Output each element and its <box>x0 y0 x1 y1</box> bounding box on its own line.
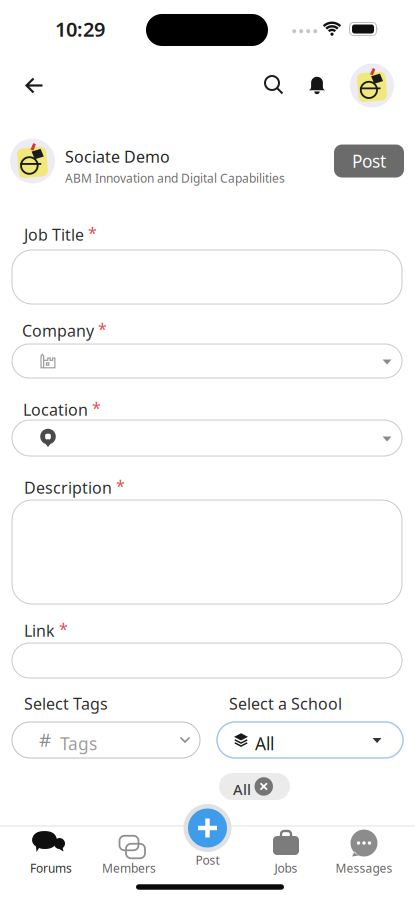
staticText: Job Title <box>24 224 84 245</box>
button[interactable]: Notifications <box>300 68 333 102</box>
button[interactable]: Messages <box>326 830 402 876</box>
button[interactable]: Post <box>183 804 231 852</box>
staticText: Select Tags <box>24 693 108 714</box>
button[interactable]: Company <box>12 344 402 378</box>
button[interactable]: Members <box>91 830 167 876</box>
staticText: Select a School <box>229 693 342 714</box>
button[interactable]: Job Title <box>12 250 402 304</box>
staticText: Forums <box>30 860 72 876</box>
staticText: Company <box>22 320 94 341</box>
button[interactable]: Location <box>12 420 402 456</box>
button[interactable]: Post <box>334 144 404 177</box>
staticText: Location <box>23 399 88 420</box>
button[interactable]: Jobs <box>248 830 324 876</box>
button[interactable]: Description <box>12 500 402 604</box>
staticText: Tags <box>60 732 97 755</box>
staticText: * <box>98 318 107 339</box>
button[interactable]: Back <box>16 69 53 102</box>
button[interactable]: Remove All <box>254 777 273 796</box>
staticText: * <box>116 475 125 496</box>
staticText: All <box>233 779 251 799</box>
staticText: Post <box>195 852 219 868</box>
staticText: Jobs <box>274 860 297 876</box>
staticText: 10:29 <box>55 16 105 42</box>
staticText: * <box>88 222 97 243</box>
staticText: Link <box>24 620 55 641</box>
staticText: Members <box>102 860 156 876</box>
staticText: Description <box>24 477 112 498</box>
staticText: * <box>59 618 68 639</box>
button[interactable]: Forums <box>13 830 89 876</box>
button[interactable]: Profile <box>350 63 394 107</box>
staticText: Post <box>352 149 386 172</box>
button[interactable]: Select Tags <box>12 722 200 758</box>
button[interactable]: Search <box>258 69 290 101</box>
staticText: All <box>255 732 274 755</box>
staticText: # <box>39 727 51 752</box>
staticText: ABM Innovation and Digital Capabilities <box>65 170 285 186</box>
staticText: Messages <box>335 860 392 876</box>
staticText: Sociate Demo <box>65 146 170 167</box>
button[interactable]: Select a School <box>217 722 403 758</box>
staticText: * <box>92 397 101 418</box>
button[interactable]: Link <box>12 643 402 678</box>
